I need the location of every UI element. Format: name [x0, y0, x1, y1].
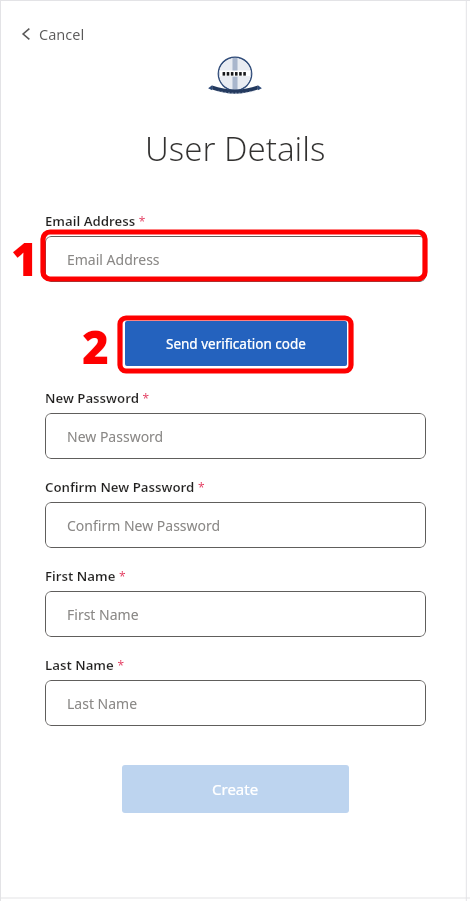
staticText: New Password *: [45, 388, 150, 407]
button[interactable]: Cancel: [16, 22, 89, 46]
button[interactable]: Confirm New Password: [45, 502, 426, 548]
staticText: Last Name: [67, 694, 138, 713]
staticText: 1: [11, 227, 38, 283]
staticText: First Name: [67, 605, 139, 624]
button[interactable]: New Password: [45, 413, 426, 459]
staticText: Email Address *: [45, 211, 146, 230]
staticText: First Name *: [45, 566, 126, 585]
staticText: 2: [82, 315, 109, 375]
staticText: User Details: [145, 126, 326, 171]
staticText: Last Name *: [45, 655, 124, 674]
button[interactable]: Email Address: [45, 236, 426, 282]
staticText: New Password: [67, 427, 164, 446]
staticText: Send verification code: [166, 335, 306, 353]
staticText: Cancel: [39, 24, 85, 44]
staticText: Email Address: [67, 250, 160, 269]
staticText: Confirm New Password *: [45, 477, 205, 496]
staticText: Confirm New Password: [67, 516, 221, 535]
staticText: Create: [212, 779, 259, 799]
button[interactable]: Last Name: [45, 680, 426, 726]
button[interactable]: First Name: [45, 591, 426, 637]
button[interactable]: Create: [122, 765, 349, 813]
button[interactable]: Send verification code: [125, 321, 347, 366]
